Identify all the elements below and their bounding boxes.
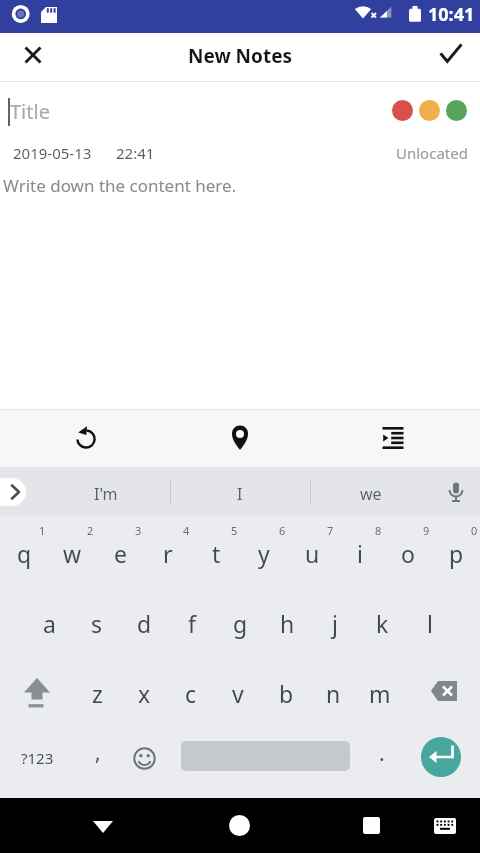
staticText: Unlocated [396,143,468,163]
staticText: 5 [231,523,238,538]
staticText: Write down the content here. [3,174,237,197]
staticText: 22:41 [116,143,155,163]
staticText: . [379,739,385,768]
button[interactable]: v [214,656,262,726]
staticText: w [63,538,82,569]
staticText: 6 [279,523,286,538]
staticText: Title [10,98,50,125]
staticText: 10:41 [428,2,475,27]
button[interactable]: t [192,516,240,586]
button[interactable] [120,727,168,789]
button[interactable]: I [200,469,280,518]
button[interactable] [13,656,61,726]
staticText: y [258,538,270,569]
staticText: I'm [94,483,118,505]
staticText: 8 [375,523,382,538]
button[interactable] [419,100,440,121]
button[interactable]: f [168,586,216,656]
button[interactable]: p [432,516,480,586]
button[interactable] [420,656,468,726]
staticText: s [91,608,103,639]
button[interactable]: b [262,656,310,726]
staticText: p [449,538,464,569]
staticText: New Notes [188,43,293,69]
staticText: j [332,608,338,639]
button[interactable]: y [240,516,288,586]
staticText: 4 [183,523,190,538]
button[interactable]: q [0,516,48,586]
button[interactable] [430,38,468,76]
staticText: k [376,608,389,639]
button[interactable]: , [74,727,122,789]
button[interactable]: I'm [66,469,146,518]
button[interactable] [425,803,465,848]
staticText: c [185,678,197,709]
button[interactable] [219,803,259,848]
staticText: h [280,608,295,639]
staticText: 9 [423,523,430,538]
staticText: l [427,608,433,639]
staticText: 1 [39,523,46,538]
button[interactable] [421,737,461,777]
button[interactable]: g [216,586,264,656]
staticText: e [114,538,127,569]
staticText: v [232,678,244,709]
button[interactable]: o [384,516,432,586]
button[interactable] [371,416,415,460]
staticText: i [357,538,363,569]
staticText: , [95,738,101,767]
staticText: ?123 [21,748,54,768]
button[interactable] [351,803,391,848]
button[interactable]: k [358,586,406,656]
button[interactable]: Title [0,82,480,170]
button[interactable] [446,100,467,121]
staticText: r [163,538,173,569]
button[interactable]: h [263,586,311,656]
button[interactable]: i [336,516,384,586]
staticText: x [138,678,151,709]
staticText: 3 [135,523,142,538]
button[interactable] [14,38,52,76]
button[interactable]: ?123 [13,727,61,789]
button[interactable] [64,416,108,460]
button[interactable]: c [167,656,215,726]
button[interactable]: l [406,586,454,656]
staticText: 2019-05-13 [13,143,92,163]
button[interactable]: x [120,656,168,726]
staticText: n [326,678,341,709]
staticText: t [212,538,221,569]
staticText: q [17,538,32,569]
button[interactable]: e [96,516,144,586]
staticText: u [305,538,320,569]
button[interactable]: . [358,727,406,789]
button[interactable]: m [356,656,404,726]
staticText: z [92,678,103,709]
button[interactable] [436,473,476,513]
button[interactable]: w [48,516,96,586]
staticText: m [369,678,391,709]
button[interactable]: a [25,586,73,656]
staticText: a [43,608,56,639]
button[interactable]: j [311,586,359,656]
staticText: g [233,608,248,639]
button[interactable]: we [331,469,411,518]
staticText: f [188,608,196,639]
staticText: we [360,483,382,505]
button[interactable]: d [120,586,168,656]
staticText: 7 [327,523,334,538]
staticText: b [279,678,294,709]
button[interactable] [83,803,123,848]
staticText: 0 [471,523,478,538]
button[interactable]: s [73,586,121,656]
button[interactable] [392,100,413,121]
button[interactable]: n [309,656,357,726]
staticText: o [401,538,415,569]
button[interactable]: u [288,516,336,586]
button[interactable] [0,478,26,506]
button[interactable] [218,416,262,460]
button[interactable]: Write down the content here. [0,170,480,409]
button[interactable]: r [144,516,192,586]
button[interactable]: z [73,656,121,726]
staticText: I [237,483,243,505]
